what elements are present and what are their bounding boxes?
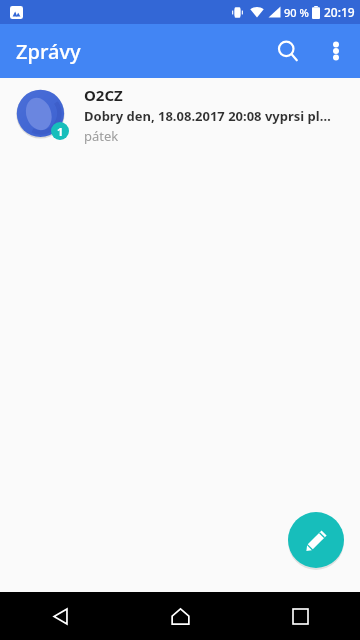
staticText: 20:19 (324, 4, 355, 20)
button[interactable]: Search (264, 27, 312, 75)
button[interactable]: 1 (0, 78, 360, 152)
button[interactable]: More options (312, 27, 360, 75)
staticText: 90 % (284, 5, 309, 20)
staticText: pátek (84, 127, 119, 145)
button[interactable]: Back (0, 592, 120, 640)
staticText: Zprávy (16, 38, 81, 65)
button[interactable]: Compose new message (288, 512, 344, 568)
staticText: Dobry den, 18.08.2017 20:08 vyprsi pl… (84, 107, 331, 125)
staticText: 1 (57, 124, 64, 139)
staticText: O2CZ (84, 85, 123, 105)
button[interactable]: Recent apps (240, 592, 360, 640)
button[interactable]: Home (120, 592, 240, 640)
